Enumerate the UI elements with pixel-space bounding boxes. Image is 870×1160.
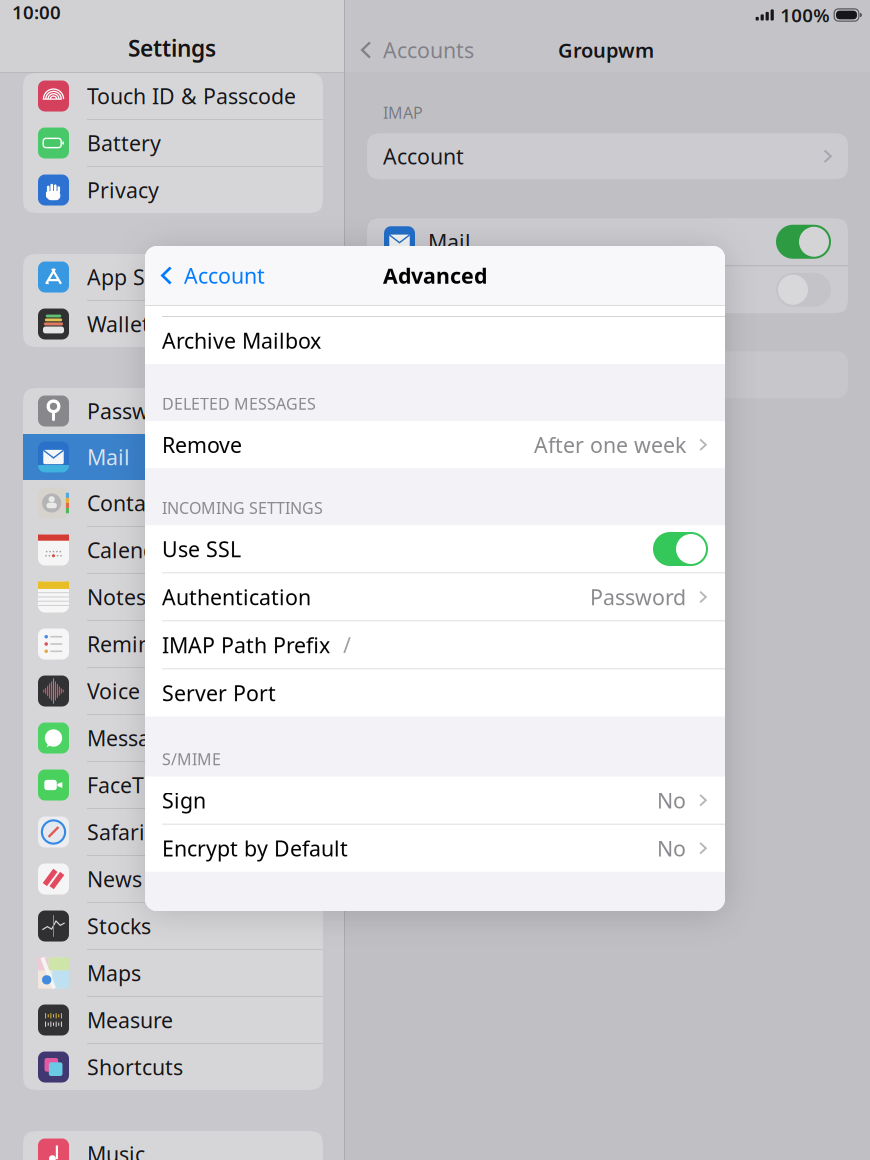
staticText: Remove bbox=[162, 431, 242, 459]
button[interactable]: FaceTime bbox=[23, 762, 323, 808]
button[interactable]: Use SSL bbox=[145, 525, 725, 572]
staticText: IMAP Path Prefix bbox=[162, 631, 330, 659]
button[interactable]: Wallet & Apple Pay bbox=[23, 301, 323, 347]
staticText: App Store bbox=[87, 263, 186, 291]
button[interactable]: Shortcuts bbox=[23, 1044, 323, 1090]
button[interactable]: Touch ID & Passcode bbox=[23, 73, 323, 119]
staticText: No bbox=[657, 834, 686, 862]
staticText: DELETED MESSAGES bbox=[162, 393, 316, 414]
button[interactable]: Battery bbox=[23, 120, 323, 166]
staticText: 100% bbox=[780, 3, 829, 27]
staticText: / bbox=[343, 631, 351, 659]
button[interactable]: Accounts bbox=[345, 36, 474, 64]
button[interactable]: Archive Mailbox bbox=[145, 317, 725, 364]
button[interactable]: IMAP Path Prefix bbox=[145, 621, 725, 668]
staticText: IMAP bbox=[383, 102, 423, 123]
button[interactable]: Authentication bbox=[145, 573, 725, 620]
button[interactable]: Voice Memos bbox=[23, 668, 323, 714]
staticText: Music bbox=[87, 1140, 145, 1160]
button[interactable]: Calendar bbox=[23, 527, 323, 573]
staticText: Account bbox=[184, 261, 265, 290]
button[interactable]: Reminders bbox=[23, 621, 323, 667]
staticText: Passwords bbox=[87, 397, 193, 425]
staticText: Account bbox=[383, 142, 464, 170]
staticText: Notes bbox=[87, 583, 146, 611]
button[interactable]: Maps bbox=[23, 950, 323, 996]
staticText: Calendar bbox=[87, 536, 177, 564]
staticText: Use SSL bbox=[162, 535, 241, 563]
staticText: Safari bbox=[87, 818, 145, 846]
button[interactable]: App Store bbox=[23, 254, 323, 300]
staticText: Encrypt by Default bbox=[162, 834, 348, 862]
staticText: Sign bbox=[162, 786, 206, 814]
button[interactable]: Encrypt by Default bbox=[145, 825, 725, 872]
button[interactable]: Music bbox=[23, 1131, 323, 1160]
staticText: Privacy bbox=[87, 176, 159, 204]
staticText: Server Port bbox=[162, 679, 276, 707]
staticText: Reminders bbox=[87, 630, 195, 658]
staticText: Maps bbox=[87, 959, 141, 987]
staticText: Shortcuts bbox=[87, 1053, 183, 1081]
staticText: INCOMING SETTINGS bbox=[162, 497, 323, 518]
button[interactable]: Server Port bbox=[145, 669, 725, 716]
staticText: Measure bbox=[87, 1006, 173, 1034]
staticText: Messages bbox=[87, 724, 185, 752]
staticText: Accounts bbox=[383, 36, 474, 64]
staticText: Advanced bbox=[383, 261, 487, 290]
staticText: Archive Mailbox bbox=[162, 326, 321, 355]
staticText: Password bbox=[590, 583, 686, 611]
staticText: FaceTime bbox=[87, 771, 182, 799]
staticText: Touch ID & Passcode bbox=[87, 82, 296, 110]
staticText: S/MIME bbox=[162, 748, 221, 770]
button[interactable]: Safari bbox=[23, 809, 323, 855]
staticText: Battery bbox=[87, 129, 161, 157]
staticText: Mail bbox=[428, 228, 471, 256]
button[interactable]: Stocks bbox=[23, 903, 323, 949]
staticText: 10:00 bbox=[12, 0, 61, 24]
button[interactable]: Mail bbox=[367, 218, 848, 265]
button[interactable]: Messages bbox=[23, 715, 323, 761]
button[interactable]: Mail bbox=[23, 434, 323, 480]
button[interactable]: Sign bbox=[145, 777, 725, 824]
staticText: Authentication bbox=[162, 583, 311, 611]
staticText: Voice Memos bbox=[87, 677, 220, 705]
staticText: After one week bbox=[534, 431, 686, 459]
staticText: Mail bbox=[87, 443, 130, 471]
button[interactable]: Contacts bbox=[23, 480, 323, 526]
button[interactable]: Passwords bbox=[23, 388, 323, 434]
staticText: Contacts bbox=[87, 489, 174, 517]
button[interactable]: Account bbox=[345, 133, 870, 179]
staticText: Wallet & Apple Pay bbox=[87, 310, 278, 338]
staticText: Groupwm bbox=[558, 37, 654, 63]
button[interactable]: Measure bbox=[23, 997, 323, 1043]
button[interactable]: Notes bbox=[367, 266, 848, 313]
button[interactable]: Advanced bbox=[345, 351, 870, 398]
button[interactable]: Privacy bbox=[23, 167, 323, 213]
staticText: Stocks bbox=[87, 912, 151, 940]
button[interactable]: News bbox=[23, 856, 323, 902]
button[interactable]: Remove bbox=[145, 421, 725, 468]
staticText: Settings bbox=[128, 33, 216, 63]
staticText: News bbox=[87, 865, 142, 893]
button[interactable]: Notes bbox=[23, 574, 323, 620]
button[interactable]: Account bbox=[145, 253, 265, 297]
staticText: No bbox=[657, 786, 686, 814]
